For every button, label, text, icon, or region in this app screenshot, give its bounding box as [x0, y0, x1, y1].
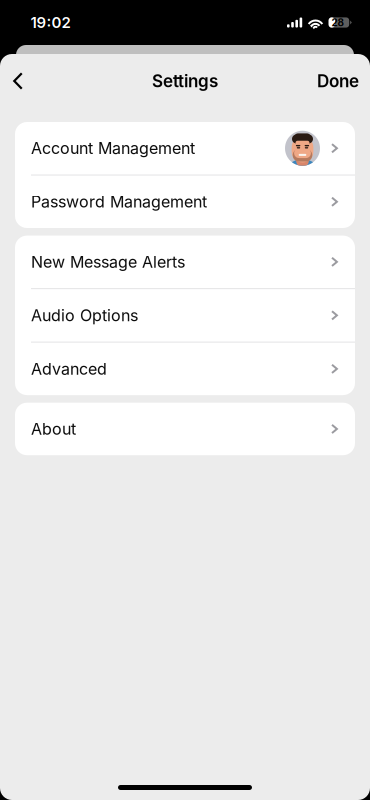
- button[interactable]: Password Management: [15, 175, 355, 228]
- button[interactable]: Audio Options: [15, 289, 355, 342]
- button[interactable]: New Message Alerts: [15, 236, 355, 288]
- staticText: 28: [332, 16, 345, 29]
- staticText: Settings: [152, 71, 218, 91]
- staticText: 19:02: [30, 13, 70, 31]
- staticText: Audio Options: [31, 306, 138, 325]
- staticText: Account Management: [31, 139, 195, 158]
- staticText: Advanced: [31, 359, 107, 379]
- staticText: About: [31, 419, 76, 439]
- button[interactable]: Done: [317, 59, 359, 103]
- button[interactable]: Advanced: [15, 343, 355, 395]
- staticText: Password Management: [31, 192, 207, 211]
- staticText: Done: [317, 71, 359, 91]
- staticText: New Message Alerts: [31, 252, 185, 272]
- button[interactable]: Back: [3, 59, 33, 103]
- button[interactable]: About: [15, 403, 355, 455]
- button[interactable]: Account Management: [15, 122, 355, 174]
